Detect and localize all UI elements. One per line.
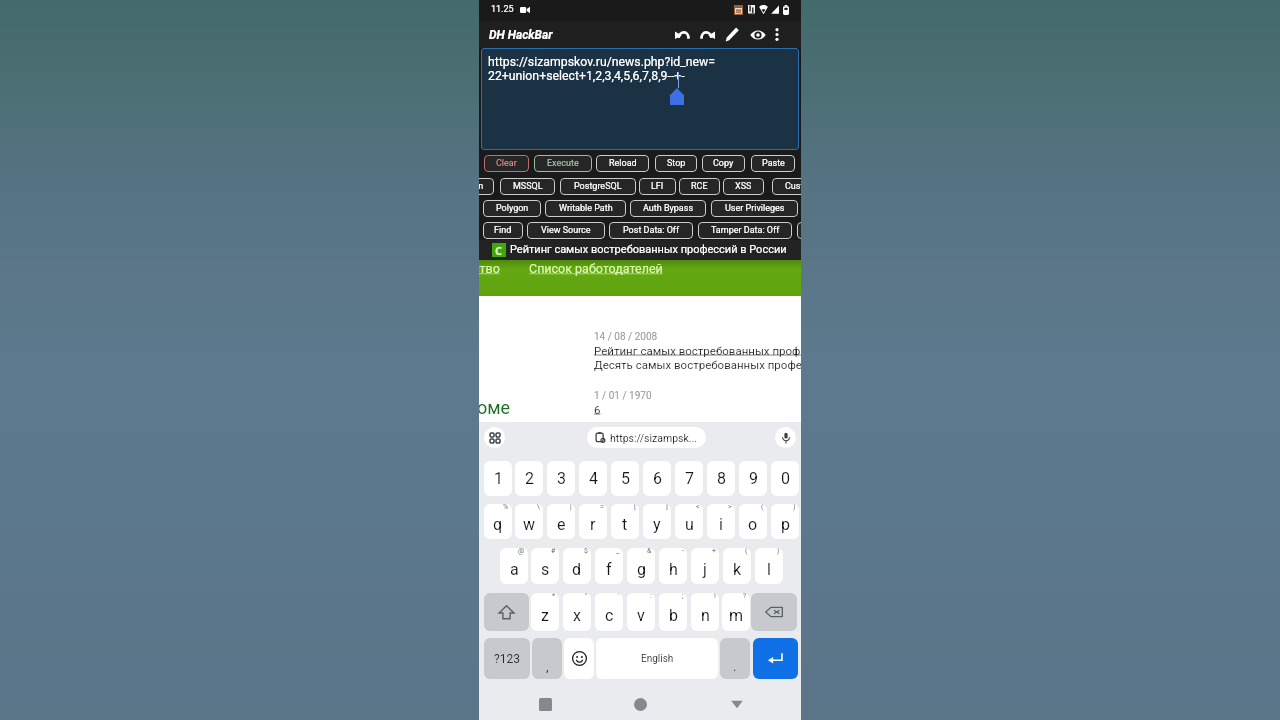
button[interactable]: t	[611, 504, 639, 539]
button[interactable]: Reload	[596, 155, 649, 172]
button[interactable]: 3	[547, 461, 575, 496]
button[interactable]: .	[720, 638, 750, 679]
button[interactable]: Clear	[484, 155, 529, 172]
button[interactable]: j	[691, 548, 719, 584]
button[interactable]: v	[627, 593, 655, 631]
button[interactable]: Stop	[655, 155, 697, 172]
button[interactable]: s	[531, 548, 559, 584]
button[interactable]: q	[484, 504, 512, 539]
button[interactable]: Auth Bypass	[630, 200, 706, 217]
staticText: Find	[494, 225, 512, 236]
staticText: 11.25	[491, 4, 514, 15]
button[interactable]: Voice input	[775, 427, 796, 448]
staticText: \	[537, 504, 540, 511]
button[interactable]: b	[659, 593, 687, 631]
button[interactable]: View Source	[527, 222, 605, 239]
button[interactable]: Keyboard toolbar	[484, 427, 505, 448]
button[interactable]: c	[595, 593, 623, 631]
button[interactable]: Execute	[534, 155, 592, 172]
staticText: Paste	[762, 158, 785, 169]
button[interactable]: https://sizampsk...	[595, 427, 698, 448]
button[interactable]: MSSQL	[500, 178, 555, 195]
button[interactable]: Copy	[702, 155, 745, 172]
button[interactable]: r	[579, 504, 607, 539]
button[interactable]: 7	[675, 461, 703, 496]
staticText: l	[767, 560, 771, 579]
button[interactable]: 6	[643, 461, 671, 496]
button[interactable]: Recents	[535, 694, 555, 714]
button[interactable]: u	[675, 504, 703, 539]
staticText: ]	[666, 504, 668, 511]
button[interactable]: i	[707, 504, 735, 539]
button[interactable]: p	[771, 504, 799, 539]
button[interactable]: h	[659, 548, 687, 584]
staticText: p	[781, 515, 790, 534]
button[interactable]: Custom	[772, 178, 801, 195]
button[interactable]: Home	[630, 694, 650, 714]
button[interactable]: ,	[532, 638, 562, 679]
button[interactable]: 5	[611, 461, 639, 496]
button[interactable]: 4	[579, 461, 607, 496]
staticText: 22+union+select+1,2,3,4,5,6,7,8,9--+-	[488, 69, 685, 83]
staticText: LFI	[651, 181, 664, 192]
button[interactable]: 0	[771, 461, 799, 496]
staticText: C	[495, 243, 503, 257]
button[interactable]: 1	[484, 461, 512, 496]
button[interactable]: x	[563, 593, 591, 631]
button[interactable]: z	[531, 593, 559, 631]
staticText: Stop	[667, 158, 686, 169]
button[interactable]: Undo	[671, 21, 694, 48]
button[interactable]: k	[723, 548, 751, 584]
staticText: $	[584, 548, 588, 555]
button[interactable]: a	[500, 548, 528, 584]
button[interactable]: Find	[483, 222, 523, 239]
button[interactable]: More options	[771, 21, 783, 48]
button[interactable]: 8	[707, 461, 735, 496]
button[interactable]: LFI	[639, 178, 676, 195]
button[interactable]: g	[627, 548, 655, 584]
button[interactable]: n	[691, 593, 719, 631]
button[interactable]: XSS	[723, 178, 764, 195]
button[interactable]: English	[596, 638, 718, 679]
button[interactable]: y	[643, 504, 671, 539]
button[interactable]: PostgreSQL	[560, 178, 636, 195]
button[interactable]: Polygon	[483, 200, 541, 217]
button[interactable]: e	[547, 504, 575, 539]
button[interactable]: m	[722, 593, 750, 631]
button[interactable]: ?123	[484, 638, 530, 679]
button[interactable]: Emoji	[564, 638, 594, 679]
button[interactable]: Union	[479, 178, 494, 195]
button[interactable]: Tamper Data: Off	[698, 222, 792, 239]
button[interactable]: f	[595, 548, 623, 584]
button[interactable]: Redo	[696, 21, 719, 48]
button[interactable]: Writable Path	[545, 200, 626, 217]
button[interactable]: 2	[515, 461, 543, 496]
button[interactable]	[797, 222, 801, 239]
button[interactable]: Preview	[746, 21, 770, 48]
staticText: https://sizampskov.ru/news.php?id_new=	[488, 55, 716, 69]
button[interactable]: User Privileges	[711, 200, 798, 217]
button[interactable]: l	[755, 548, 783, 584]
button[interactable]: Post Data: Off	[609, 222, 693, 239]
button[interactable]: RCE	[679, 178, 720, 195]
button[interactable]: 9	[739, 461, 767, 496]
staticText: 6	[594, 403, 601, 416]
staticText: e	[557, 515, 566, 534]
staticText: Custom	[785, 181, 801, 192]
button[interactable]: Back	[727, 694, 747, 714]
button[interactable]: d	[563, 548, 591, 584]
button[interactable]: Backspace	[751, 593, 797, 631]
button[interactable]: w	[515, 504, 543, 539]
button[interactable]: Edit	[721, 21, 744, 48]
button[interactable]: o	[739, 504, 767, 539]
button[interactable]: https://sizampskov.ru/news.php?id_new=	[481, 48, 799, 150]
button[interactable]: Shift	[484, 593, 529, 631]
button[interactable]: Enter	[753, 638, 798, 679]
staticText: Десять самых востребованных профессий	[594, 358, 801, 371]
staticText: View Source	[541, 225, 591, 236]
button[interactable]: Paste	[751, 155, 795, 172]
staticText: c	[605, 606, 614, 625]
staticText: 2	[525, 469, 534, 488]
staticText: =	[600, 504, 604, 511]
staticText: *	[552, 593, 556, 600]
